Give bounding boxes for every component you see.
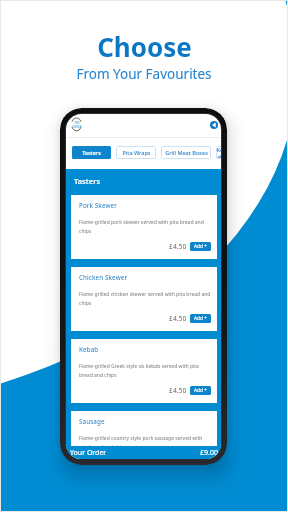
staticText: Choose <box>97 29 192 64</box>
button[interactable]: Kebab <box>71 339 217 403</box>
button[interactable]: Pork Skewer <box>71 195 217 259</box>
button[interactable]: Your Order <box>66 446 221 459</box>
staticText: Flame-grilled country style pork sausage… <box>79 435 219 451</box>
staticText: Tasters <box>82 149 101 156</box>
button[interactable]: Back <box>210 121 218 129</box>
staticText: Tasters <box>74 176 101 186</box>
button[interactable]: Add + <box>190 242 211 251</box>
button[interactable]: Add + <box>190 458 211 459</box>
staticText: Add + <box>194 243 207 250</box>
button[interactable]: Chicken Skewer <box>71 267 217 331</box>
staticText: Chicken Skewer <box>79 273 128 281</box>
staticText: £9.00 <box>200 448 218 458</box>
staticText: Pita Wraps <box>122 149 151 156</box>
staticText: Flame-grilled Greek style sis kebab serv… <box>79 363 219 379</box>
button[interactable]: Pita Wraps <box>116 146 156 159</box>
staticText: Your Order <box>70 448 107 458</box>
button[interactable]: Sausage <box>71 411 217 459</box>
staticText: From Your Favourites <box>76 65 212 83</box>
staticText: THE GREEK <box>72 121 82 128</box>
button[interactable]: Add + <box>190 386 211 395</box>
staticText: Flame-grilled pork skewer served with pi… <box>79 219 219 235</box>
button[interactable]: Tasters <box>72 146 111 159</box>
button[interactable]: Kebabs <box>216 146 221 159</box>
staticText: Sausage <box>79 417 105 425</box>
staticText: £4.50 <box>169 242 187 251</box>
staticText: Pork Skewer <box>79 201 118 209</box>
staticText: Flame grilled chicken skewer served with… <box>79 291 219 307</box>
staticText: Add + <box>194 387 207 394</box>
staticText: £4.50 <box>169 314 187 323</box>
staticText: Kebabs <box>216 146 221 159</box>
staticText: Grill Meat Boxes <box>165 149 208 156</box>
staticText: Add + <box>194 315 207 322</box>
staticText: £4.50 <box>169 386 187 395</box>
button[interactable]: Add + <box>190 314 211 323</box>
staticText: Kebab <box>79 345 99 353</box>
button[interactable]: Grill Meat Boxes <box>161 146 211 159</box>
